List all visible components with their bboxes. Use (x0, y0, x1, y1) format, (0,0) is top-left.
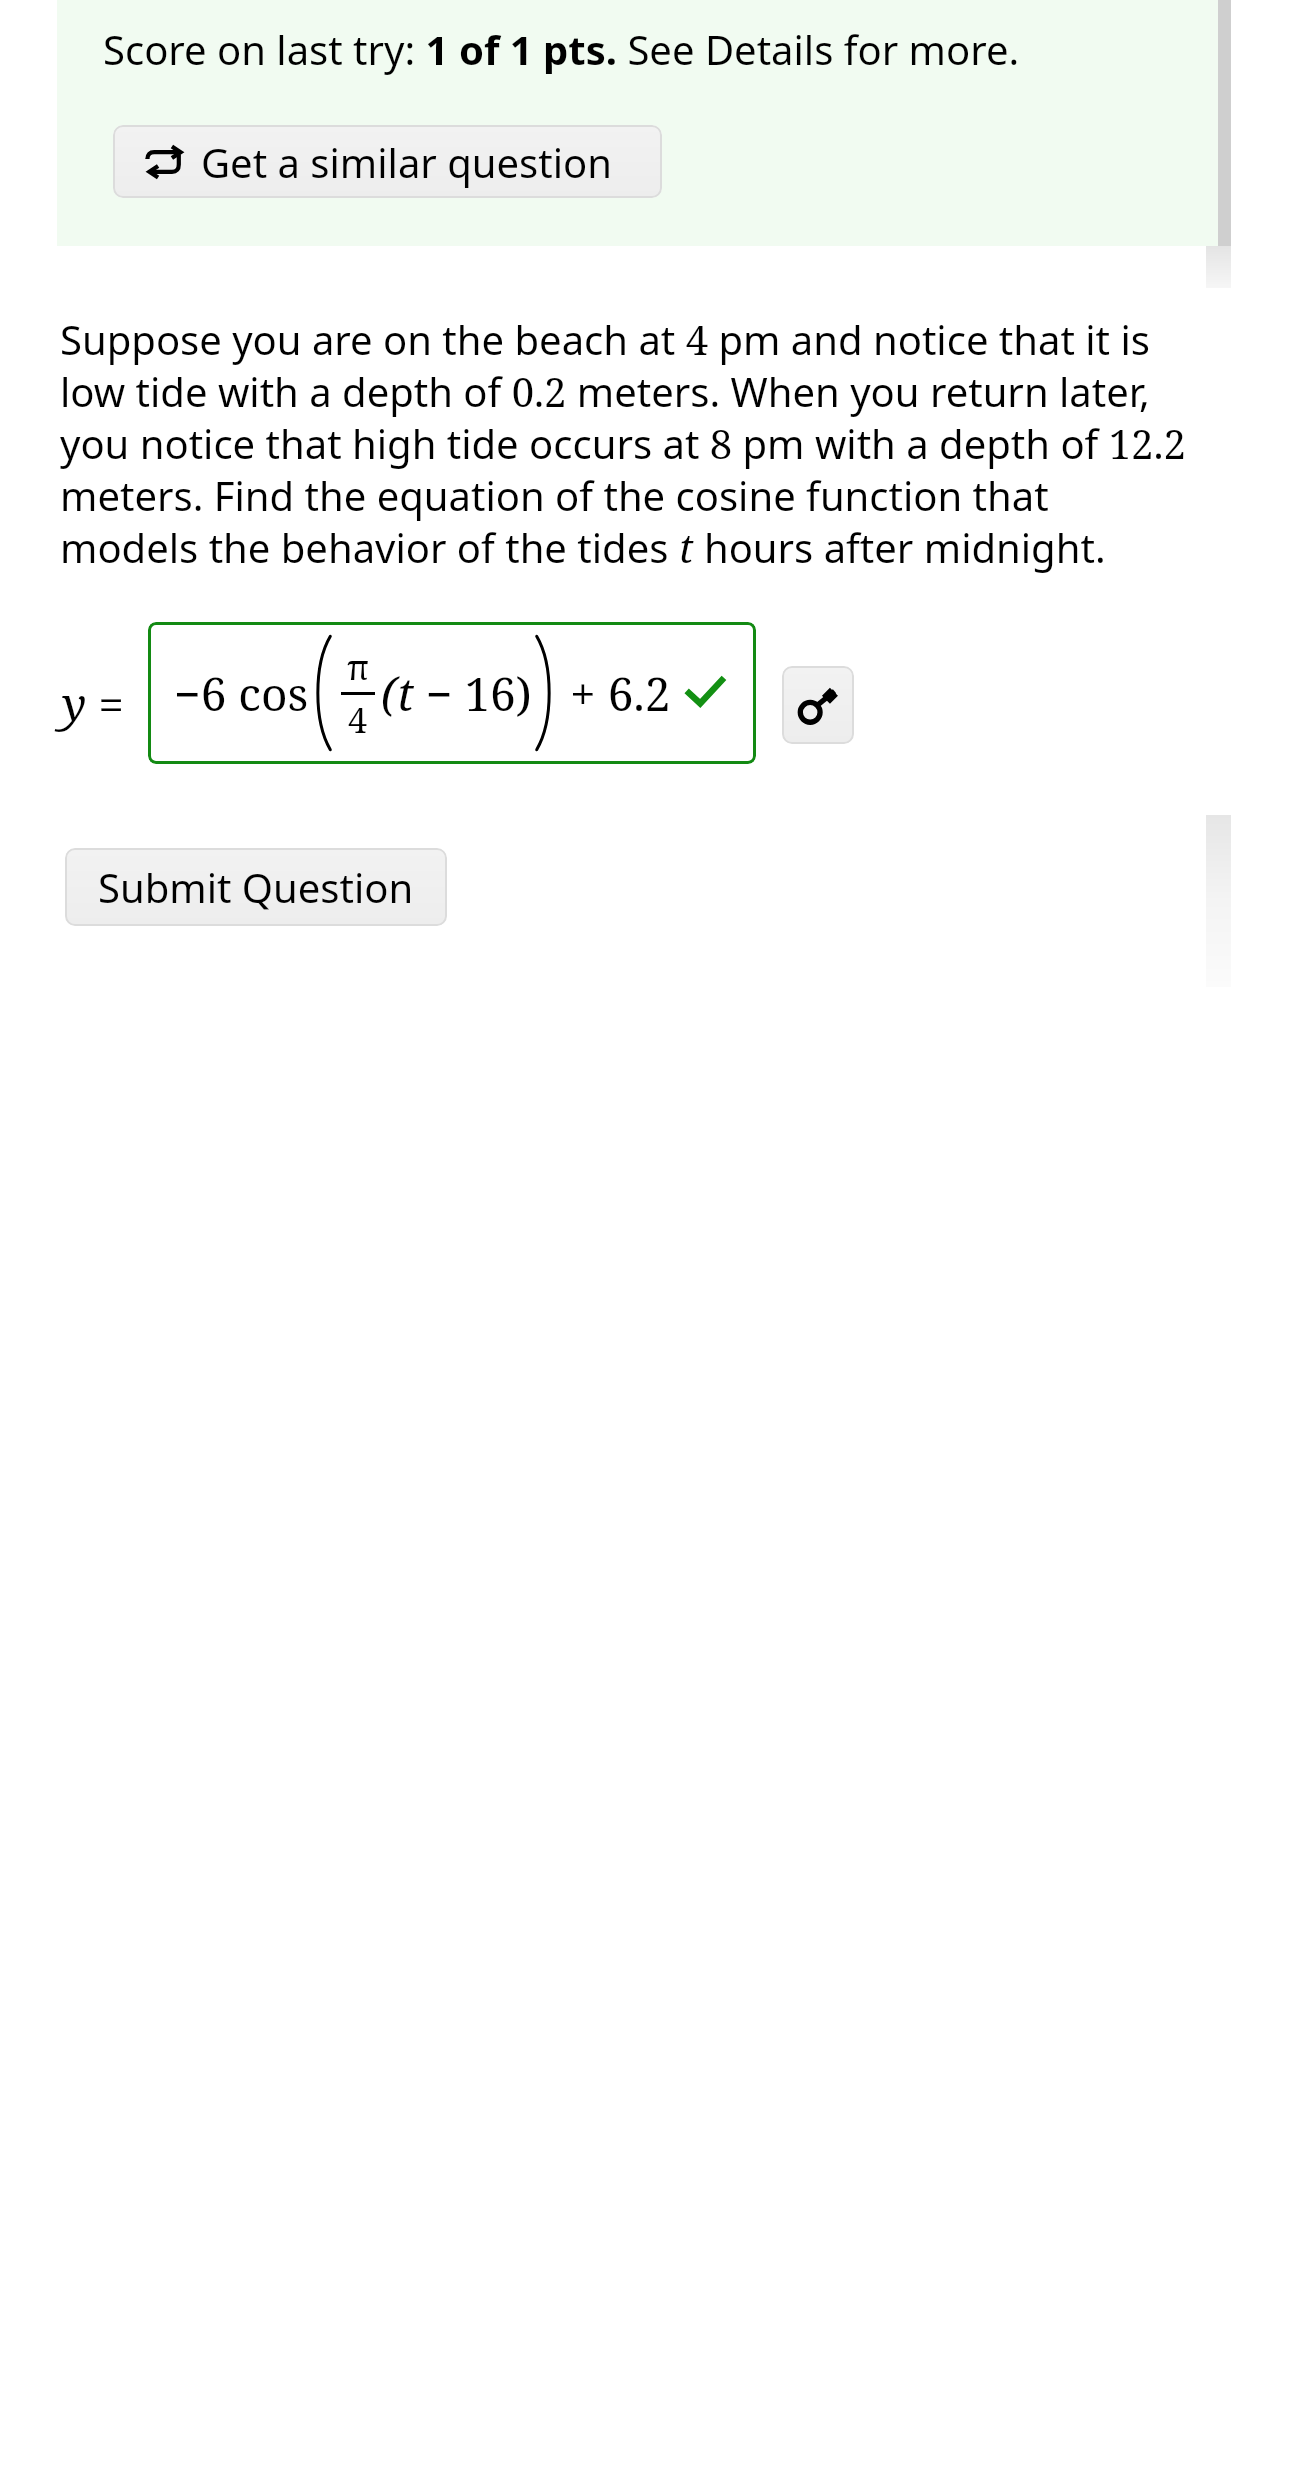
staticText: y = (62, 672, 124, 735)
staticText: Get a similar question (201, 135, 612, 189)
button[interactable]: Submit Question (65, 848, 447, 926)
staticText: Suppose you are on the beach at 4 pm and… (60, 312, 1190, 575)
button[interactable]: Get a similar question (113, 125, 662, 198)
staticText: 4 (348, 697, 368, 743)
button[interactable]: Answer key (782, 666, 854, 744)
staticText: −6 cos (174, 662, 309, 725)
staticText: Submit Question (98, 860, 414, 914)
staticText: π (347, 644, 370, 690)
staticText: Score on last try: 1 of 1 pts. See Detai… (103, 22, 1020, 76)
staticText: + 6.2 (558, 662, 671, 725)
staticText: (t − 16) (381, 662, 532, 725)
button[interactable]: −6 cos (148, 622, 756, 764)
